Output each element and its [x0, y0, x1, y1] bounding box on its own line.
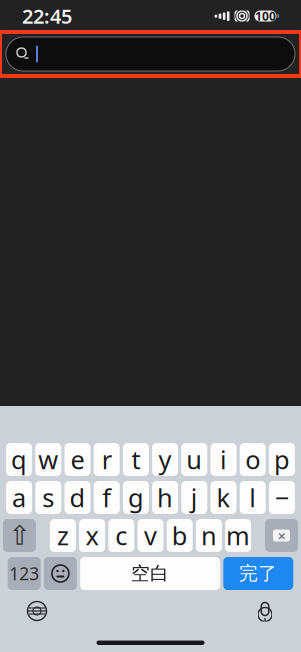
button[interactable]: i [210, 443, 236, 476]
button[interactable]: w [35, 443, 61, 476]
staticText: r [102, 443, 112, 476]
button[interactable]: o [240, 443, 266, 476]
staticText: z [57, 519, 69, 552]
button[interactable]: e [64, 443, 90, 476]
button[interactable]: Emoji [44, 557, 77, 590]
button[interactable]: r [94, 443, 120, 476]
staticText: e [70, 443, 84, 476]
staticText: t [131, 443, 140, 476]
button[interactable]: k [210, 481, 236, 514]
button[interactable]: Dictation [255, 600, 275, 622]
button[interactable]: v [137, 519, 163, 552]
staticText: 100 [255, 8, 276, 24]
button[interactable]: Search field [6, 37, 295, 71]
button[interactable]: n [196, 519, 222, 552]
staticText: l [249, 481, 256, 514]
button[interactable]: t [123, 443, 149, 476]
staticText: × [277, 526, 285, 545]
button[interactable]: Shift [3, 519, 36, 552]
staticText: u [186, 443, 202, 476]
staticText: b [172, 519, 188, 552]
button[interactable]: 完了 [223, 557, 293, 590]
staticText: o [245, 443, 260, 476]
button[interactable]: p [269, 443, 295, 476]
staticText: 22:45 [22, 3, 72, 29]
staticText: g [128, 481, 144, 514]
staticText: j [191, 481, 198, 514]
button[interactable]: y [152, 443, 178, 476]
staticText: a [12, 481, 26, 514]
staticText: − [275, 481, 289, 514]
button[interactable]: a [6, 481, 32, 514]
button[interactable]: l [240, 481, 266, 514]
button[interactable]: x [79, 519, 105, 552]
button[interactable]: q [6, 443, 32, 476]
button[interactable]: u [181, 443, 207, 476]
button[interactable]: 空白 [80, 557, 220, 590]
staticText: k [216, 481, 230, 514]
button[interactable]: f [94, 481, 120, 514]
staticText: p [274, 443, 290, 476]
staticText: d [69, 481, 85, 514]
staticText: x [86, 519, 99, 552]
staticText: f [102, 481, 111, 514]
staticText: c [115, 519, 127, 552]
staticText: n [201, 519, 217, 552]
button[interactable]: h [152, 481, 178, 514]
staticText: y [159, 443, 172, 476]
staticText: 123 [9, 562, 39, 585]
button[interactable]: c [108, 519, 134, 552]
button[interactable]: j [181, 481, 207, 514]
staticText: 空白 [131, 562, 169, 585]
button[interactable]: d [64, 481, 90, 514]
button[interactable]: − [269, 481, 295, 514]
staticText: q [11, 443, 27, 476]
staticText: v [144, 519, 157, 552]
button[interactable]: z [50, 519, 76, 552]
button[interactable]: Next keyboard [26, 600, 48, 622]
staticText: h [157, 481, 173, 514]
button[interactable]: Delete [265, 519, 298, 552]
staticText: w [38, 443, 58, 476]
button[interactable]: m [225, 519, 251, 552]
staticText: i [220, 443, 227, 476]
staticText: s [42, 481, 54, 514]
staticText: 完了 [239, 562, 277, 585]
button[interactable]: s [35, 481, 61, 514]
staticText: m [226, 519, 250, 552]
staticText: ⇧ [8, 520, 30, 551]
button[interactable]: b [167, 519, 193, 552]
button[interactable]: Numbers [8, 557, 41, 590]
button[interactable]: g [123, 481, 149, 514]
